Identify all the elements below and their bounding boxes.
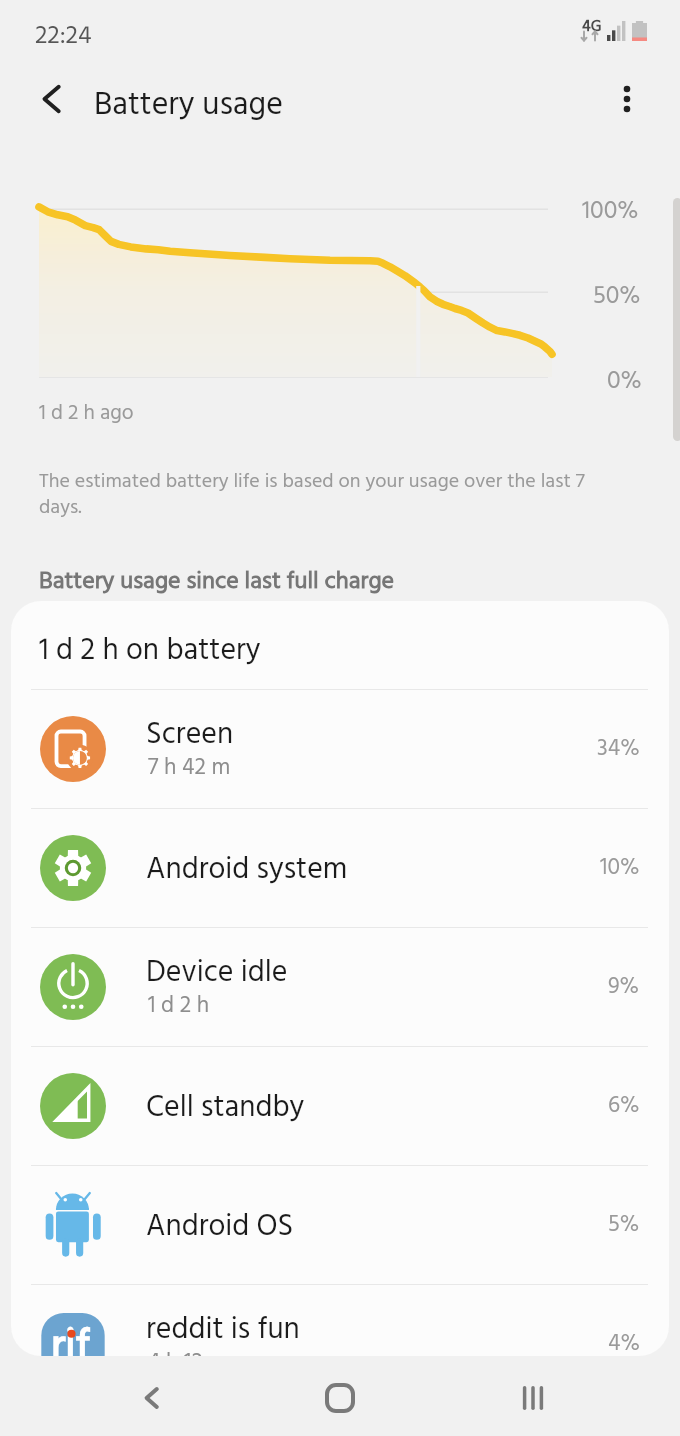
- staticText: Android system: [146, 846, 348, 894]
- button[interactable]: Android system: [11, 809, 669, 928]
- staticText: 4 h 12 m: [148, 1345, 228, 1356]
- staticText: reddit is fun: [146, 1306, 300, 1354]
- staticText: 0%: [607, 362, 642, 402]
- staticText: 1 d 2 h ago: [39, 397, 134, 431]
- staticText: 6%: [608, 1088, 640, 1125]
- staticText: Battery usage: [94, 80, 283, 131]
- button[interactable]: Screen: [11, 690, 669, 809]
- staticText: 4%: [608, 1326, 640, 1356]
- staticText: 1 d 2 h: [148, 988, 210, 1025]
- staticText: 7 h 42 m: [148, 750, 231, 787]
- button[interactable]: Cell standby: [11, 1047, 669, 1166]
- button[interactable]: rif: [11, 1285, 669, 1356]
- staticText: Screen: [146, 711, 234, 759]
- button[interactable]: Android OS: [11, 1166, 669, 1285]
- button[interactable]: Recent apps: [503, 1368, 563, 1428]
- staticText: Cell standby: [146, 1084, 305, 1132]
- staticText: 34%: [597, 731, 640, 768]
- button[interactable]: Device idle: [11, 928, 669, 1047]
- staticText: Device idle: [146, 949, 288, 997]
- staticText: Android OS: [146, 1203, 294, 1251]
- staticText: 5%: [608, 1207, 640, 1244]
- button[interactable]: Back: [122, 1368, 182, 1428]
- button[interactable]: More options: [601, 73, 653, 125]
- button[interactable]: Home: [310, 1368, 370, 1428]
- staticText: 50%: [593, 277, 641, 317]
- staticText: rif: [51, 1314, 91, 1356]
- staticText: 9%: [608, 969, 640, 1006]
- staticText: 10%: [600, 850, 640, 887]
- button[interactable]: Back: [26, 73, 78, 125]
- staticText: 1 d 2 h on battery: [39, 627, 261, 675]
- staticText: The estimated battery life is based on y…: [39, 466, 619, 524]
- staticText: 22:24: [35, 17, 92, 57]
- staticText: 4G: [582, 14, 602, 40]
- staticText: Battery usage since last full charge: [39, 563, 395, 601]
- staticText: 100%: [582, 192, 639, 232]
